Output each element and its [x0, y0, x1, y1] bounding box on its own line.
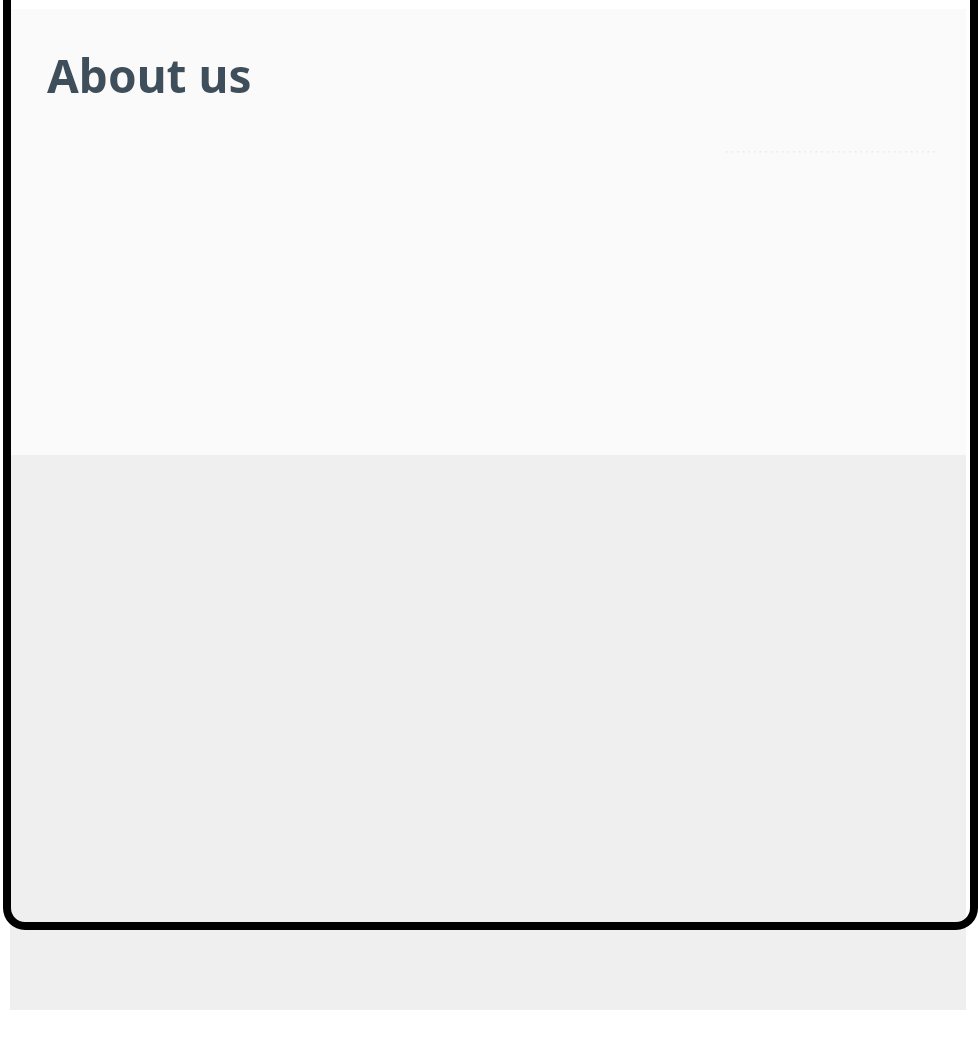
button[interactable]: About us [47, 44, 252, 107]
staticText: About us [47, 44, 252, 107]
